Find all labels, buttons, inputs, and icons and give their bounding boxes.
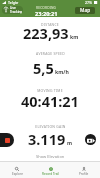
staticText: Explore bbox=[12, 172, 23, 176]
staticText: RECORDING bbox=[36, 6, 57, 10]
staticText: 27% bbox=[85, 0, 93, 5]
staticText: Live Tracking bbox=[10, 6, 23, 14]
staticText: MOVING TIME bbox=[37, 88, 63, 93]
button[interactable]: Stop recording bbox=[0, 133, 14, 147]
button[interactable]: Profile bbox=[67, 162, 100, 176]
staticText: 40:41:21 bbox=[21, 91, 79, 111]
staticText: 223,93 bbox=[23, 23, 69, 43]
staticText: 3.119 bbox=[28, 129, 66, 149]
staticText: Map bbox=[80, 7, 91, 14]
staticText: 23:20:21 bbox=[35, 10, 58, 18]
button[interactable]: Camera bbox=[85, 134, 96, 145]
staticText: Profile bbox=[79, 172, 89, 176]
staticText: 5,5 bbox=[33, 58, 54, 78]
staticText: km bbox=[70, 33, 79, 40]
staticText: Telgte bbox=[8, 0, 19, 5]
button[interactable]: Live Tracking bbox=[2, 6, 23, 14]
staticText: Show Elevation bbox=[36, 154, 65, 159]
button[interactable]: Show Elevation bbox=[33, 153, 68, 160]
staticText: AVERAGE SPEED bbox=[36, 51, 65, 56]
staticText: m bbox=[67, 139, 73, 146]
staticText: DISTANCE bbox=[41, 22, 59, 27]
button[interactable]: Explore bbox=[0, 162, 34, 176]
staticText: Record Trail bbox=[42, 172, 60, 176]
button[interactable]: Map bbox=[75, 7, 95, 14]
button[interactable]: Record Trail bbox=[34, 162, 67, 176]
staticText: ELEVATION GAIN bbox=[35, 124, 66, 129]
staticText: km/h bbox=[55, 68, 69, 75]
